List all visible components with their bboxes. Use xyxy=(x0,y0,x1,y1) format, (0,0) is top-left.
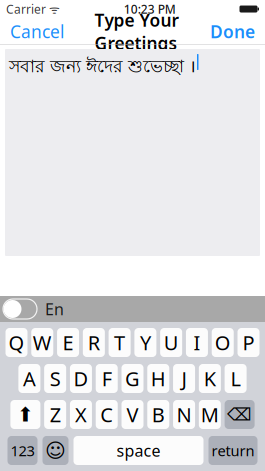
button[interactable]: L xyxy=(225,364,247,393)
button[interactable]: U xyxy=(160,328,182,357)
button[interactable]: V xyxy=(121,400,143,429)
button[interactable]: E xyxy=(57,328,79,357)
staticText: F xyxy=(102,365,112,392)
staticText: O xyxy=(215,329,231,356)
staticText: G xyxy=(125,365,140,392)
staticText: return xyxy=(211,441,254,460)
staticText: Z xyxy=(50,401,61,428)
button[interactable]: space xyxy=(73,436,203,465)
staticText: J xyxy=(182,365,187,392)
button[interactable]: Cancel xyxy=(2,18,72,45)
staticText: U xyxy=(164,329,179,356)
button[interactable]: G xyxy=(121,364,143,393)
staticText: R xyxy=(88,329,100,356)
staticText: Carrier xyxy=(6,1,46,17)
staticText: Type Your Greetings xyxy=(94,8,179,54)
button[interactable]: Keyboard language toggle xyxy=(2,298,38,320)
staticText: X xyxy=(75,401,87,428)
staticText: S xyxy=(50,365,61,392)
button[interactable]: Shift xyxy=(10,400,40,429)
staticText: 10:23 PM xyxy=(124,1,176,17)
button[interactable]: D xyxy=(70,364,92,393)
staticText: P xyxy=(242,329,254,356)
staticText: Cancel xyxy=(10,20,64,43)
staticText: V xyxy=(126,401,138,428)
button[interactable]: Done xyxy=(202,18,263,45)
staticText: B xyxy=(152,401,165,428)
button[interactable]: H xyxy=(147,364,169,393)
button[interactable]: I xyxy=(186,328,208,357)
button[interactable]: M xyxy=(199,400,221,429)
button[interactable]: F xyxy=(96,364,118,393)
staticText: space xyxy=(116,440,160,461)
staticText: 123 xyxy=(10,441,34,460)
staticText: Y xyxy=(140,329,151,356)
button[interactable]: O xyxy=(212,328,234,357)
button[interactable]: Emoji xyxy=(42,436,68,465)
staticText: Done xyxy=(210,20,255,43)
staticText: A xyxy=(23,365,36,392)
button[interactable]: 123 xyxy=(7,436,37,465)
staticText: Q xyxy=(8,329,24,356)
staticText: ☺ xyxy=(45,439,66,462)
staticText: N xyxy=(177,401,192,428)
staticText: En xyxy=(45,298,64,320)
staticText: T xyxy=(114,329,125,356)
staticText: H xyxy=(151,365,166,392)
staticText: I xyxy=(193,329,200,356)
button[interactable]: C xyxy=(96,400,118,429)
button[interactable]: T xyxy=(109,328,131,357)
staticText: D xyxy=(73,365,88,392)
staticText: C xyxy=(100,401,113,428)
button[interactable]: Delete xyxy=(225,400,255,429)
button[interactable]: S xyxy=(44,364,66,393)
button[interactable]: P xyxy=(237,328,259,357)
staticText: ⬆ xyxy=(17,403,34,426)
staticText: ⌫ xyxy=(227,405,252,424)
button[interactable]: N xyxy=(173,400,195,429)
staticText: সবার জন্য ঈদের শুভেচ্ছা । xyxy=(9,54,196,79)
staticText: K xyxy=(204,365,216,392)
button[interactable]: A xyxy=(18,364,40,393)
button[interactable]: K xyxy=(199,364,221,393)
staticText: W xyxy=(33,329,52,356)
button[interactable]: Y xyxy=(134,328,156,357)
button[interactable]: Z xyxy=(44,400,66,429)
button[interactable]: return xyxy=(208,436,257,465)
button[interactable]: B xyxy=(147,400,169,429)
staticText: L xyxy=(231,365,241,392)
staticText: E xyxy=(63,329,74,356)
button[interactable]: X xyxy=(70,400,92,429)
button[interactable]: J xyxy=(173,364,195,393)
button[interactable]: R xyxy=(83,328,105,357)
staticText: ᯤ xyxy=(46,1,60,17)
staticText: M xyxy=(201,401,219,428)
button[interactable]: W xyxy=(31,328,53,357)
button[interactable]: Q xyxy=(5,328,27,357)
